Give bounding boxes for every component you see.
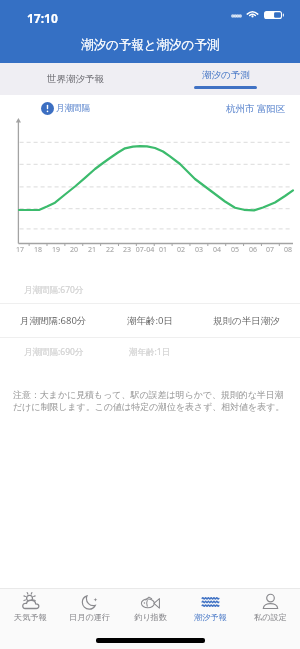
staticText: 潮年齢:0日 (127, 314, 173, 327)
button[interactable]: 私の設定 (240, 589, 300, 632)
staticText: 21 (81, 245, 103, 255)
staticText: 04 (206, 245, 228, 255)
staticText: 20 (63, 245, 85, 255)
button[interactable]: 月潮間隔:670分 (0, 276, 300, 303)
staticText: 02 (170, 245, 192, 255)
button[interactable]: 月潮間隔:690分 (0, 338, 300, 365)
button[interactable]: 日月の運行 (60, 589, 120, 632)
staticText: 月潮間隔:680分 (20, 314, 87, 327)
staticText: 杭州市 富阳区 (226, 102, 286, 115)
staticText: 潮汐予報 (194, 612, 227, 622)
staticText: 23 (116, 245, 138, 255)
staticText: 注意：大まかに見積もって、駅の誤差は明らかで、規則的な半日潮 だけに制限します。… (13, 389, 285, 413)
staticText: 17 (9, 245, 31, 255)
staticText: 釣り指数 (134, 612, 167, 622)
button[interactable]: 月潮間隔:680分 (0, 304, 300, 337)
staticText: 03 (188, 245, 210, 255)
staticText: 天気予報 (14, 612, 47, 622)
staticText: 月潮間隔:670分 (24, 284, 84, 296)
button[interactable]: 釣り指数 (120, 589, 180, 632)
staticText: 19 (45, 245, 67, 255)
button[interactable]: 潮汐の予測 (150, 63, 300, 95)
staticText: 22 (99, 245, 121, 255)
staticText: 月潮間隔:690分 (24, 346, 84, 358)
staticText: 潮年齢:1日 (129, 346, 171, 358)
staticText: 規則の半日潮汐 (213, 315, 280, 327)
staticText: 01 (152, 245, 174, 255)
staticText: 私の設定 (254, 612, 287, 622)
staticText: 18 (27, 245, 49, 255)
staticText: 08 (277, 245, 299, 255)
staticText: 潮汐の予測 (202, 69, 250, 81)
button[interactable]: 天気予報 (0, 589, 60, 632)
staticText: 17:10 (27, 10, 58, 26)
staticText: 07-04 (134, 245, 156, 255)
staticText: 月潮間隔 (56, 103, 90, 114)
button[interactable]: 潮汐予報 (180, 589, 240, 632)
staticText: 07 (259, 245, 281, 255)
staticText: 06 (242, 245, 264, 255)
staticText: 世界潮汐予報 (47, 73, 104, 85)
staticText: 潮汐の予報と潮汐の予測 (81, 37, 220, 53)
staticText: 05 (224, 245, 246, 255)
staticText: 日月の運行 (69, 612, 111, 622)
button[interactable]: 世界潮汐予報 (0, 63, 150, 95)
